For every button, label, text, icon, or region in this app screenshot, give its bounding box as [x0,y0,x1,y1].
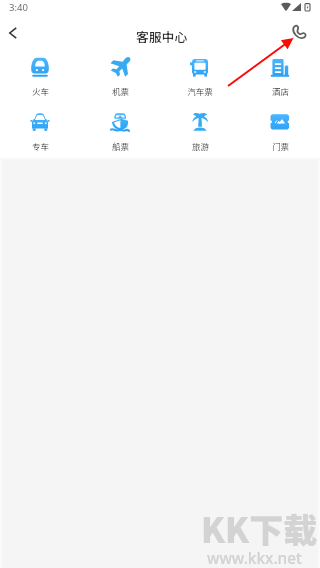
button[interactable]: 专车 [0,0,80,158]
staticText: 船票 [112,140,129,152]
staticText: 3:40 [9,1,28,14]
button[interactable]: 汽车票 [160,0,240,158]
staticText: 酒店 [272,85,289,97]
staticText: KK下载 [201,504,318,553]
button[interactable]: 火车 [0,0,80,158]
staticText: 旅游 [192,140,209,152]
button[interactable]: 门票 [240,0,320,158]
staticText: 门票 [272,140,289,152]
staticText: 客服中心 [136,27,188,46]
staticText: 专车 [32,140,49,152]
button[interactable]: 酒店 [240,0,320,158]
staticText: 汽车票 [187,85,213,97]
button[interactable]: Back [1,20,25,45]
button[interactable]: 机票 [80,0,160,158]
staticText: 火车 [32,85,49,97]
staticText: 机票 [112,85,129,97]
button[interactable]: Call customer service [288,20,311,44]
staticText: www.kkx.net [207,548,302,568]
button[interactable]: 旅游 [160,0,240,158]
button[interactable]: 船票 [80,0,160,158]
